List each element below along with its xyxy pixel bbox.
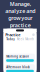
staticText: Week bbox=[16, 37, 23, 41]
staticText: Month bbox=[25, 37, 34, 41]
staticText: Manage, analyze and grow your practice bbox=[5, 0, 35, 29]
staticText: Morning session bbox=[6, 55, 29, 58]
staticText: Afternoon block bbox=[6, 65, 30, 69]
staticText: Practice bbox=[5, 32, 20, 37]
staticText: Today bbox=[6, 37, 14, 41]
